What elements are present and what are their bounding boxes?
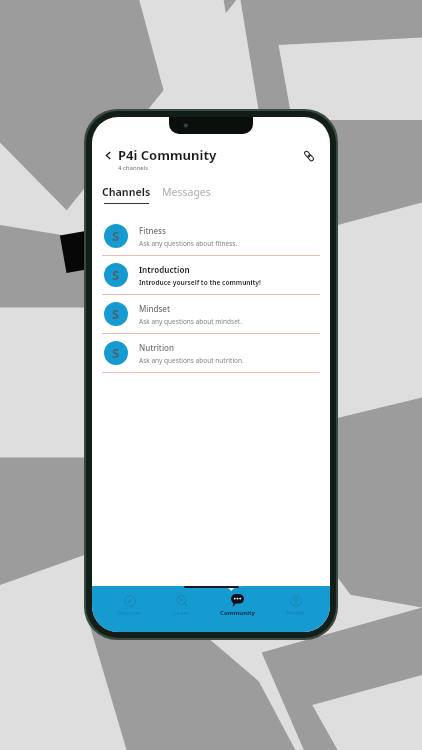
button[interactable]: Community [215, 593, 260, 618]
staticText: S [112, 266, 120, 284]
staticText: Nutrition [139, 342, 174, 353]
button[interactable]: Discover [112, 593, 147, 618]
staticText: Learn [173, 609, 190, 617]
button[interactable]: S [92, 217, 330, 255]
staticText: Mindset [139, 303, 171, 314]
staticText: Ask any questions about mindset. [139, 317, 242, 326]
button[interactable]: Messages [162, 185, 211, 199]
button[interactable]: Back [102, 149, 115, 162]
button[interactable]: Learn [168, 593, 195, 618]
staticText: Messages [162, 185, 211, 199]
button[interactable]: S [92, 256, 330, 294]
staticText: Ask any questions about nutrition. [139, 356, 244, 365]
button[interactable]: Channels [102, 185, 151, 204]
staticText: Profile [286, 609, 305, 617]
button[interactable]: Profile [281, 593, 310, 618]
button[interactable]: Copy link [299, 146, 319, 166]
staticText: S [112, 227, 120, 245]
staticText: 4 channels [118, 164, 149, 172]
staticText: Fitness [139, 225, 166, 236]
staticText: S [112, 344, 120, 362]
staticText: P4i Community [118, 146, 217, 164]
button[interactable]: S [92, 334, 330, 372]
staticText: Community [220, 609, 255, 617]
staticText: Channels [102, 185, 151, 199]
staticText: Introduce yourself to the community! [139, 278, 261, 287]
button[interactable]: S [92, 295, 330, 333]
staticText: Introduction [139, 264, 190, 275]
staticText: S [112, 305, 120, 323]
staticText: Ask any questions about fitness. [139, 239, 238, 248]
staticText: Discover [117, 609, 142, 617]
